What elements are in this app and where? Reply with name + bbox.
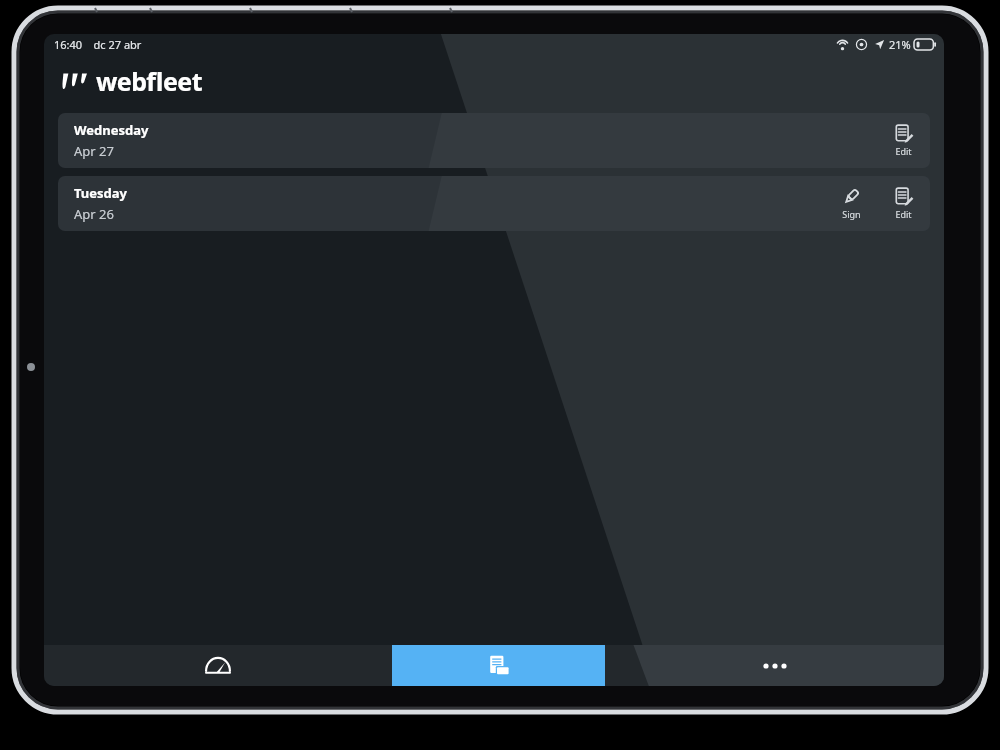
- staticText: Edit: [895, 208, 912, 220]
- staticText: Edit: [895, 145, 912, 157]
- button[interactable]: Edit: [884, 121, 922, 160]
- staticText: Tuesday: [74, 184, 128, 202]
- staticText: Wednesday: [74, 121, 149, 139]
- staticText: 16:40 dc 27 abr: [54, 37, 142, 52]
- staticText: webfleet: [96, 64, 202, 98]
- button[interactable]: Edit: [884, 184, 922, 223]
- staticText: Apr 26: [74, 205, 114, 223]
- button[interactable]: Wednesday: [58, 113, 930, 168]
- button[interactable]: More: [605, 645, 944, 686]
- button[interactable]: Tuesday: [58, 176, 930, 231]
- button[interactable]: Dashboard: [44, 645, 392, 686]
- button[interactable]: Webfleet: [62, 64, 202, 98]
- staticText: Apr 27: [74, 142, 114, 160]
- button[interactable]: Sign: [832, 184, 870, 223]
- staticText: Sign: [842, 208, 861, 220]
- staticText: 21%: [889, 37, 911, 52]
- button[interactable]: Logbook: [392, 645, 605, 686]
